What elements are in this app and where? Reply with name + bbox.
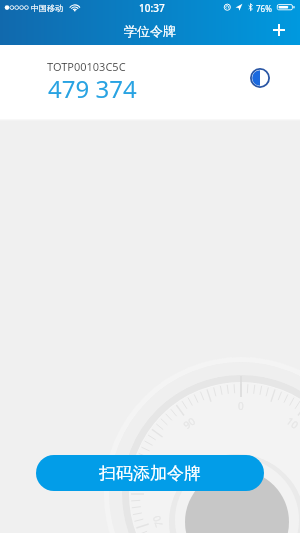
button[interactable]: 扫码添加令牌 xyxy=(36,455,264,491)
staticText: 扫码添加令牌 xyxy=(99,463,201,484)
staticText: 学位令牌 xyxy=(124,23,176,39)
button[interactable]: TOTP00103C5C xyxy=(0,45,300,119)
staticText: 76% xyxy=(256,3,272,14)
button[interactable]: Add token xyxy=(262,13,295,46)
staticText: 479 374 xyxy=(48,72,137,105)
button[interactable]: Countdown xyxy=(240,58,280,98)
staticText: TOTP00103C5C xyxy=(47,59,126,74)
staticText: 中国移动 xyxy=(31,3,63,13)
staticText: 10:37 xyxy=(139,1,165,15)
